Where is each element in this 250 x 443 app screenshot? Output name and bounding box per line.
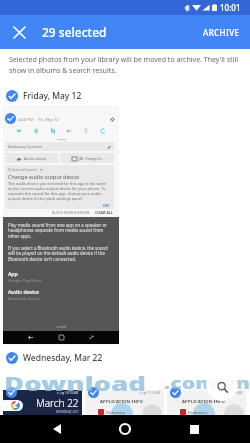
- staticText: Dictionary: [188, 410, 208, 415]
- staticText: Selected photos from your library will b…: [9, 55, 244, 75]
- staticText: APPLICATION INFO: [100, 399, 144, 405]
- staticText: Audio output: [24, 156, 47, 161]
- staticText: 10:01: [220, 2, 241, 13]
- staticText: Dictionary: [106, 410, 126, 415]
- staticText: ▾ ⊿ ▮ 10:13 AM: [139, 391, 161, 395]
- button[interactable]: ▾ ⊿ ▮ 10:13 AM: [3, 390, 82, 415]
- staticText: Download: [4, 370, 146, 397]
- staticText: Samsung Connect: [8, 144, 43, 149]
- button[interactable]: 4:40 PM · Fri, May 12: [3, 106, 119, 345]
- staticText: Audio device: [8, 288, 39, 295]
- staticText: The audio device you selected for this a…: [8, 181, 111, 201]
- staticText: ▾ ⊿ ▮ 10:13 AM: [221, 391, 243, 395]
- staticText: cricket: [56, 324, 67, 329]
- staticText: OK: [103, 203, 109, 208]
- staticText: Android System: [12, 167, 38, 172]
- button[interactable]: Search: [206, 369, 238, 401]
- staticText: Friday, May 12: [23, 90, 82, 102]
- button[interactable]: ▾ ⊿ ▮ 10:13 AM: [85, 390, 164, 415]
- staticText: March 22: [36, 396, 79, 410]
- staticText: Bluetooth device: [8, 296, 40, 301]
- staticText: App: [8, 270, 18, 277]
- staticText: CLEAR ALL: [95, 210, 113, 215]
- staticText: ▾ ⊿ ▮ 10:13 AM: [57, 391, 79, 395]
- staticText: ARCHIVE: [203, 27, 240, 38]
- button[interactable]: Close selection: [8, 21, 30, 43]
- staticText: 4:40 PM · Fri, May 12: [18, 117, 59, 122]
- button[interactable]: Back: [45, 417, 69, 441]
- button[interactable]: Friday, May 12: [0, 87, 250, 104]
- staticText: Play media sound from one app on a speak…: [8, 222, 112, 240]
- button[interactable]: ARCHIVE: [193, 21, 250, 44]
- button[interactable]: Home: [113, 417, 137, 441]
- staticText: JBL Charge 2+: [79, 156, 103, 161]
- staticText: 29 selected: [42, 24, 107, 40]
- button[interactable]: Wednesday, Mar 22: [0, 349, 250, 366]
- staticText: APPLICATION INFO: [182, 399, 226, 405]
- staticText: .com.vn: [164, 373, 250, 393]
- button[interactable]: Recent apps: [182, 417, 206, 441]
- button[interactable]: ▾ ⊿ ▮ 10:13 AM: [167, 390, 246, 415]
- staticText: BLOCK NOTIFICATIONS: [52, 210, 90, 215]
- staticText: If you select a Bluetooth audio device, …: [8, 245, 112, 263]
- staticText: Change audio output device: [8, 173, 80, 180]
- staticText: Wednesday, Mar 22: [23, 352, 103, 364]
- staticText: Google Play Music: [8, 278, 43, 283]
- staticText: WEDNESDAY, 2017: [56, 410, 79, 414]
